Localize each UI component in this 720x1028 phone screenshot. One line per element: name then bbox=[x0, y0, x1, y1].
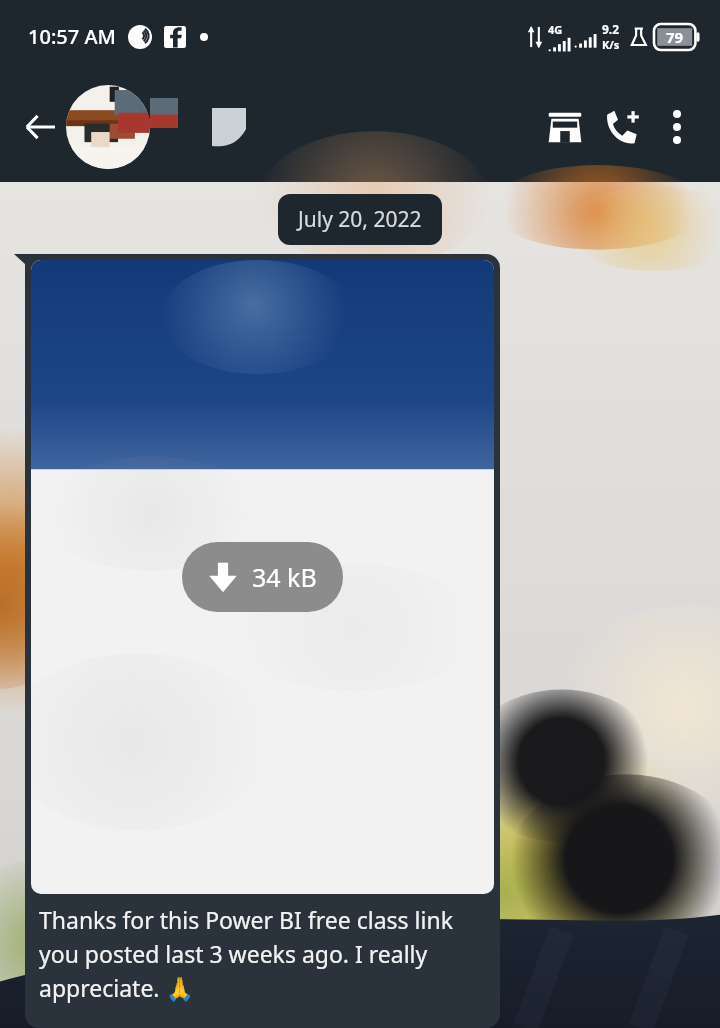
staticText: July 20, 2022 bbox=[298, 205, 422, 234]
button[interactable]: Contact photo bbox=[66, 85, 150, 169]
button[interactable]: Business profile bbox=[536, 98, 594, 156]
staticText: K/s bbox=[602, 37, 620, 52]
button[interactable]: July 20, 2022 bbox=[278, 194, 442, 245]
button[interactable]: 34 kB bbox=[182, 542, 343, 612]
staticText: 9.2 bbox=[602, 21, 620, 37]
button[interactable]: Photo attachment bbox=[31, 260, 494, 894]
staticText: 34 kB bbox=[252, 560, 317, 594]
staticText: Thanks for this Power BI free class link… bbox=[39, 904, 484, 1004]
button[interactable]: Back bbox=[14, 101, 66, 153]
staticText: 4G bbox=[548, 22, 563, 37]
button[interactable]: Add call bbox=[594, 98, 652, 156]
staticText: 10:57 AM bbox=[28, 23, 116, 50]
staticText: 79 bbox=[666, 27, 684, 47]
button[interactable]: Photo attachment bbox=[25, 254, 500, 1028]
button[interactable]: More options bbox=[652, 102, 702, 152]
